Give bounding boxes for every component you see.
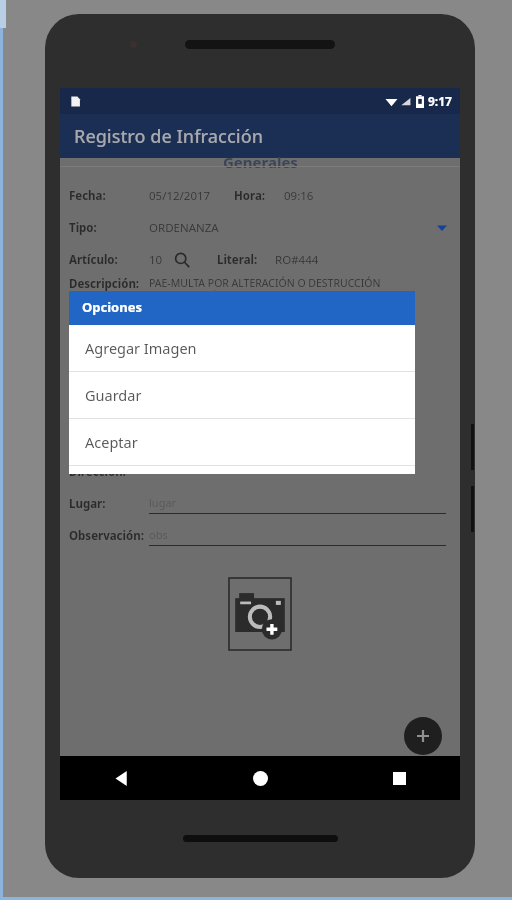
staticText: RO#444 <box>275 252 319 268</box>
staticText: obs <box>149 527 168 542</box>
button[interactable]: Buscar artículo <box>171 249 193 271</box>
staticText: Agregar Imagen <box>85 338 197 358</box>
button[interactable]: Guardar <box>69 372 415 418</box>
staticText: Dirección: <box>69 464 126 480</box>
button[interactable]: Desplegar tipo <box>437 223 447 233</box>
staticText: Valor: <box>69 368 103 384</box>
staticText: Hora: <box>234 188 266 204</box>
staticText: 9:17 <box>428 93 452 109</box>
button[interactable]: Inicio <box>243 761 277 795</box>
button[interactable]: Atrás <box>104 761 138 795</box>
staticText: Tipo: <box>69 220 97 236</box>
staticText: Artículo: <box>69 252 118 268</box>
staticText: Fecha: <box>69 188 106 204</box>
staticText: Guardar <box>85 385 142 405</box>
staticText: Puntos: <box>69 336 113 352</box>
staticText: lugar <box>149 495 177 510</box>
button[interactable]: Agregar <box>404 717 442 755</box>
staticText: Literal: <box>217 252 258 268</box>
button[interactable]: Agregar imagen <box>218 566 302 661</box>
staticText: 05/12/2017 <box>149 188 211 204</box>
staticText: Cantidad: <box>69 432 124 448</box>
staticText: Propietario: <box>69 400 137 416</box>
staticText: Observación: <box>69 528 144 544</box>
staticText: Generales <box>223 152 298 172</box>
staticText: 10 <box>149 252 163 268</box>
staticText: ORDENANZA <box>149 220 219 236</box>
staticText: Lugar: <box>69 496 106 512</box>
staticText: Aceptar <box>85 432 138 452</box>
staticText: 09:16 <box>284 188 314 204</box>
button[interactable]: Aceptar <box>69 419 415 465</box>
staticText: Registro de Infracción <box>74 124 263 149</box>
staticText: Opciones <box>82 298 142 316</box>
button[interactable]: Agregar Imagen <box>69 325 415 371</box>
button[interactable]: Recientes <box>382 761 416 795</box>
staticText: Descripción: <box>69 276 140 292</box>
staticText: PAE-MULTA POR ALTERACIÓN O DESTRUCCIÓN D… <box>149 276 381 304</box>
